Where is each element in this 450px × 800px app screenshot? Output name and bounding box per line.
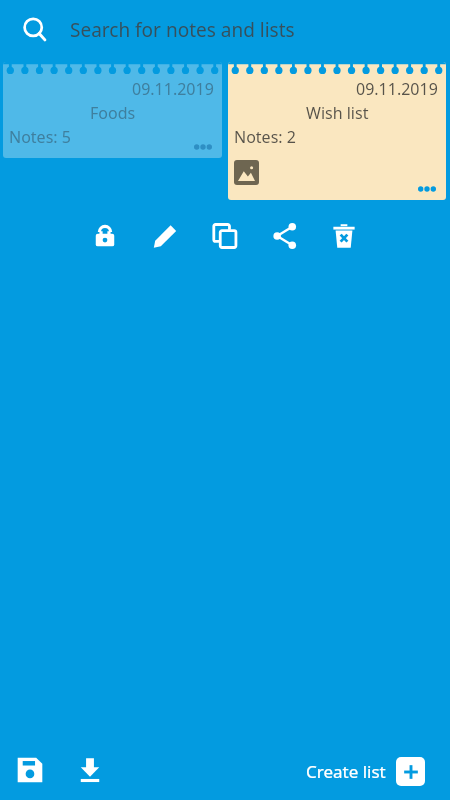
button[interactable]: Create list [306,752,442,790]
button[interactable]: Copy [205,216,245,256]
button[interactable]: 09.11.2019 [228,62,446,200]
button[interactable]: Search [0,0,450,60]
button[interactable]: More options [194,144,212,150]
staticText: Notes: 5 [9,126,71,148]
staticText: Wish list [306,102,369,124]
button[interactable]: Download [72,752,108,788]
staticText: Create list [306,760,386,783]
staticText: 09.11.2019 [132,78,214,100]
staticText: 09.11.2019 [356,78,438,100]
button[interactable]: Edit [145,216,185,256]
button[interactable]: 09.11.2019 [3,62,222,158]
button[interactable]: More options [418,186,436,192]
button[interactable]: Lock [85,216,125,256]
staticText: Foods [90,102,136,124]
staticText: Notes: 2 [234,126,296,148]
button[interactable]: Delete [324,216,364,256]
other: Search [22,17,48,43]
button[interactable]: Share [265,216,305,256]
staticText: Search for notes and lists [70,17,295,43]
button[interactable]: Save [12,752,48,788]
